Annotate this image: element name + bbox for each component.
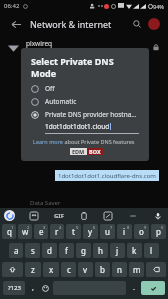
- staticText: z: [31, 264, 35, 275]
- staticText: k: [132, 245, 137, 256]
- button[interactable]: z: [25, 262, 41, 277]
- button[interactable]: Off: [31, 84, 141, 93]
- staticText: EDM: [72, 148, 85, 155]
- button[interactable]: Stickers: [28, 210, 40, 222]
- staticText: f: [65, 245, 68, 256]
- staticText: l: [150, 245, 153, 256]
- button[interactable]: s: [25, 243, 40, 258]
- button[interactable]: Enter: [141, 281, 165, 295]
- staticText: o: [139, 226, 144, 237]
- button[interactable]: p: [151, 224, 166, 239]
- staticText: Select Private DNS Mode: [31, 55, 141, 79]
- staticText: i: [123, 226, 126, 237]
- staticText: c: [67, 264, 71, 275]
- button[interactable]: l: [144, 243, 159, 258]
- button[interactable]: ?123: [3, 281, 25, 295]
- button[interactable]: v: [78, 262, 93, 277]
- button[interactable]: Private DNS provider hostname: [31, 110, 141, 119]
- staticText: 3: [43, 225, 46, 230]
- button[interactable]: u: [100, 224, 115, 239]
- staticText: about Private DNS features: [63, 138, 135, 145]
- staticText: 8: [127, 225, 130, 230]
- staticText: e: [39, 226, 44, 237]
- button[interactable]: a: [9, 243, 23, 258]
- button[interactable]: More options: [127, 210, 139, 222]
- staticText: w: [22, 226, 29, 237]
- staticText: q: [7, 226, 12, 237]
- button[interactable]: Shift: [2, 262, 23, 277]
- staticText: h: [98, 245, 103, 256]
- staticText: 4: [59, 225, 62, 230]
- button[interactable]: b: [95, 262, 110, 277]
- button[interactable]: plxwireq: [8, 36, 160, 58]
- button[interactable]: g: [76, 243, 91, 258]
- staticText: t: [72, 226, 75, 237]
- staticText: j: [116, 245, 119, 256]
- button[interactable]: i: [117, 224, 132, 239]
- button[interactable]: f: [59, 243, 74, 258]
- staticText: 5: [76, 225, 79, 230]
- staticText: ,: [32, 283, 34, 293]
- button[interactable]: Search: [129, 16, 145, 32]
- staticText: 0: [161, 225, 164, 230]
- button[interactable]: x: [43, 262, 59, 277]
- button[interactable]: e: [34, 224, 48, 239]
- staticText: BOX: [89, 148, 101, 155]
- staticText: p: [156, 226, 161, 237]
- button[interactable]: Backspace: [146, 262, 166, 277]
- button[interactable]: c: [61, 262, 76, 277]
- staticText: Network & internet: [30, 18, 112, 30]
- staticText: a: [14, 245, 19, 256]
- button[interactable]: Google: [4, 210, 15, 221]
- staticText: 1dot1dot1dot1.cloud: [45, 122, 110, 131]
- staticText: s: [31, 245, 35, 256]
- button[interactable]: Comma: [27, 281, 38, 295]
- button[interactable]: Emoji: [40, 281, 51, 295]
- button[interactable]: Voice input: [152, 210, 164, 222]
- button[interactable]: k: [127, 243, 142, 258]
- button[interactable]: m: [129, 262, 144, 277]
- staticText: r: [55, 226, 59, 237]
- staticText: 6: [93, 225, 96, 230]
- staticText: Learn more: [33, 138, 63, 145]
- staticText: 9: [144, 225, 147, 230]
- staticText: ?123: [8, 284, 21, 292]
- button[interactable]: Back: [8, 16, 24, 32]
- button[interactable]: o: [134, 224, 149, 239]
- button[interactable]: Period: [128, 281, 139, 295]
- button[interactable]: r: [50, 224, 64, 239]
- button[interactable]: n: [112, 262, 127, 277]
- staticText: Off: [45, 84, 55, 93]
- button[interactable]: q: [2, 224, 16, 239]
- button[interactable]: Clipboard: [78, 210, 90, 222]
- button[interactable]: GIF: [53, 211, 65, 221]
- staticText: u: [105, 226, 110, 237]
- staticText: b: [100, 264, 105, 275]
- staticText: plxwireq: [26, 39, 53, 48]
- staticText: v: [83, 264, 88, 275]
- staticText: y: [88, 226, 93, 237]
- button[interactable]: Automatic: [31, 97, 141, 106]
- button[interactable]: w: [18, 224, 32, 239]
- staticText: 1: [11, 225, 14, 230]
- button[interactable]: Translate: [102, 210, 114, 222]
- staticText: GIF: [54, 212, 64, 220]
- button[interactable]: d: [42, 243, 57, 258]
- button[interactable]: 1dot1dot1dot1.cloudflare-dns.com: [55, 170, 159, 181]
- button[interactable]: h: [93, 243, 108, 258]
- button[interactable]: j: [110, 243, 125, 258]
- button[interactable]: Account: [148, 18, 160, 30]
- button[interactable]: t: [66, 224, 81, 239]
- button[interactable]: y: [83, 224, 98, 239]
- staticText: .: [133, 283, 135, 293]
- staticText: 2: [27, 225, 30, 230]
- staticText: g: [81, 245, 86, 256]
- staticText: d: [47, 245, 52, 256]
- staticText: 94%: [153, 3, 164, 10]
